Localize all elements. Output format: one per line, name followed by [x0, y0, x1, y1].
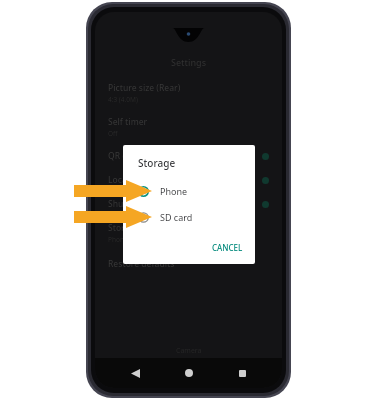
staticText: Settings: [171, 56, 207, 68]
button[interactable]: Restore defaults: [95, 258, 282, 270]
button[interactable]: QR code: [95, 150, 282, 162]
staticText: Camera: [176, 346, 202, 356]
staticText: Location tags: [108, 174, 163, 186]
button[interactable]: Picture size (Rear): [95, 82, 282, 104]
staticText: QR code: [108, 150, 142, 162]
staticText: Picture size (Rear): [108, 82, 181, 94]
button[interactable]: Home: [176, 360, 202, 386]
button[interactable]: Location tags: [95, 174, 282, 186]
staticText: Storage: [138, 156, 176, 170]
button[interactable]: SD card: [123, 206, 255, 228]
staticText: Off: [108, 129, 118, 138]
button[interactable]: CANCEL: [200, 236, 255, 259]
staticText: Self timer: [108, 116, 148, 128]
staticText: Restore defaults: [108, 258, 175, 270]
button[interactable]: Shutter sound: [95, 198, 282, 210]
button[interactable]: Storage: [95, 222, 282, 244]
staticText: CANCEL: [212, 242, 243, 253]
staticText: Phone: [108, 235, 128, 244]
staticText: 4:3 (4.0M): [108, 95, 138, 104]
staticText: Shutter sound: [108, 198, 166, 210]
staticText: Storage: [108, 222, 140, 234]
staticText: Phone: [160, 185, 188, 197]
button[interactable]: Recent apps: [229, 360, 255, 386]
staticText: SD card: [160, 211, 193, 223]
button[interactable]: Phone: [123, 180, 255, 202]
button[interactable]: Back: [122, 360, 148, 386]
button[interactable]: Self timer: [95, 116, 282, 138]
